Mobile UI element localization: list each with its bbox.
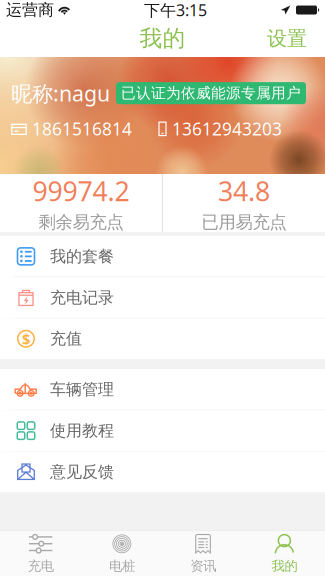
button[interactable]: $ bbox=[0, 318, 325, 359]
button[interactable]: 充电记录 bbox=[0, 277, 325, 318]
button[interactable]: 充电 bbox=[0, 531, 81, 576]
staticText: 已用易充点 bbox=[201, 212, 286, 233]
staticText: $ bbox=[22, 329, 30, 348]
staticText: 资讯 bbox=[190, 558, 216, 574]
button[interactable]: 电桩 bbox=[81, 531, 162, 576]
staticText: 昵称:nagu bbox=[11, 79, 110, 107]
staticText: 剩余易充点 bbox=[38, 212, 123, 233]
staticText: 运营商 bbox=[6, 0, 54, 20]
button[interactable]: 我的套餐 bbox=[0, 236, 325, 277]
staticText: 99974.2 bbox=[32, 173, 129, 208]
staticText: 充电记录 bbox=[50, 288, 114, 307]
staticText: 意见反馈 bbox=[50, 462, 114, 482]
button[interactable]: 使用教程 bbox=[0, 410, 325, 451]
staticText: 车辆管理 bbox=[50, 380, 114, 399]
staticText: 充值 bbox=[50, 329, 82, 349]
button[interactable]: 车辆管理 bbox=[0, 369, 325, 410]
staticText: 电桩 bbox=[109, 558, 135, 574]
staticText: 我的 bbox=[139, 25, 185, 52]
staticText: 1861516814 bbox=[32, 117, 132, 140]
button[interactable]: 设置 bbox=[253, 17, 325, 60]
staticText: 已认证为依威能源专属用户 bbox=[121, 84, 301, 102]
button[interactable]: 资讯 bbox=[162, 531, 244, 576]
staticText: 13612943203 bbox=[172, 117, 282, 140]
button[interactable]: 意见反馈 bbox=[0, 451, 325, 492]
staticText: 下午3:15 bbox=[144, 0, 207, 21]
staticText: 设置 bbox=[267, 26, 307, 51]
button[interactable]: 我的 bbox=[244, 531, 325, 576]
staticText: 34.8 bbox=[218, 173, 270, 208]
staticText: 使用教程 bbox=[50, 421, 114, 440]
staticText: 充电 bbox=[28, 558, 54, 574]
staticText: 我的 bbox=[271, 558, 297, 574]
staticText: 我的套餐 bbox=[50, 246, 114, 266]
